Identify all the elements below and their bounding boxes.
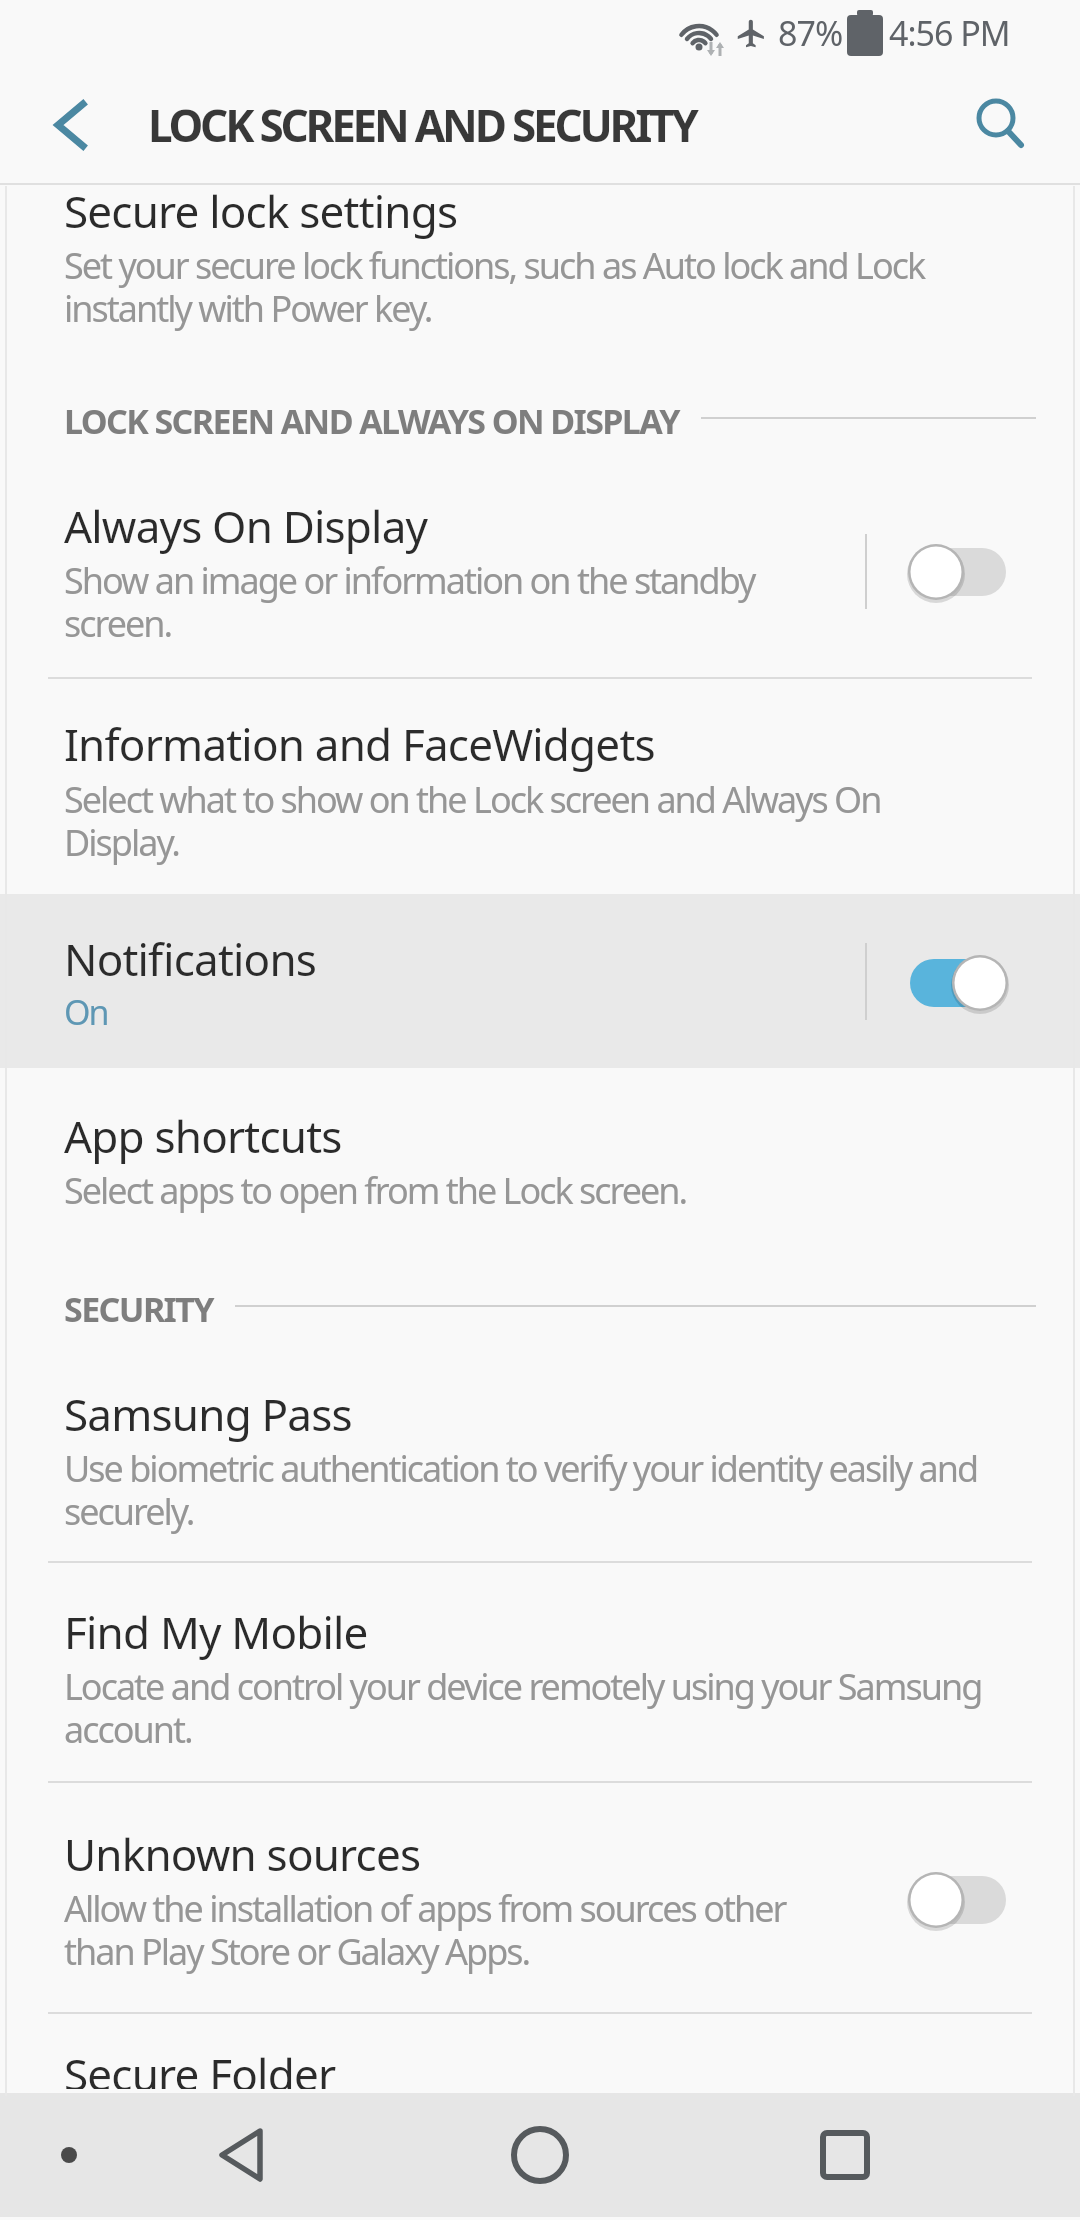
staticText: Secure lock settings xyxy=(64,181,458,241)
button[interactable] xyxy=(795,2105,895,2205)
staticText: 4:56 PM xyxy=(889,10,1010,56)
button[interactable]: Unknown sources xyxy=(0,1783,1080,2012)
staticText: Unknown sources xyxy=(64,1824,421,1884)
button[interactable] xyxy=(40,95,100,155)
staticText: On xyxy=(64,989,108,1035)
staticText: Locate and control your device remotely … xyxy=(64,1662,982,1754)
staticText: LOCK SCREEN AND ALWAYS ON DISPLAY xyxy=(64,398,679,444)
button[interactable]: Samsung Pass xyxy=(0,1357,1080,1561)
staticText: Allow the installation of apps from sour… xyxy=(64,1884,786,1976)
staticText: Find My Mobile xyxy=(64,1602,368,1662)
button[interactable]: Secure Folder xyxy=(0,2014,1080,2093)
button[interactable] xyxy=(968,93,1032,157)
staticText: App shortcuts xyxy=(64,1106,342,1166)
staticText: Set your secure lock functions, such as … xyxy=(64,241,925,333)
staticText: Information and FaceWidgets xyxy=(64,714,655,774)
button[interactable]: Find My Mobile xyxy=(0,1563,1080,1781)
staticText: Select what to show on the Lock screen a… xyxy=(64,775,881,867)
staticText: SECURITY xyxy=(64,1286,213,1332)
button[interactable]: Information and FaceWidgets xyxy=(0,679,1080,894)
staticText: 87% xyxy=(778,10,843,56)
staticText: Secure Folder xyxy=(64,2044,336,2089)
staticText: Use biometric authentication to verify y… xyxy=(64,1444,978,1536)
button[interactable]: App shortcuts xyxy=(0,1068,1080,1259)
staticText: Show an image or information on the stan… xyxy=(64,556,755,648)
button[interactable] xyxy=(190,2105,290,2205)
staticText: Select apps to open from the Lock screen… xyxy=(64,1166,687,1215)
staticText: Samsung Pass xyxy=(64,1384,352,1444)
staticText: Notifications xyxy=(64,929,317,989)
button[interactable] xyxy=(490,2105,590,2205)
button[interactable]: Notifications xyxy=(0,894,1080,1068)
staticText: LOCK SCREEN AND SECURITY xyxy=(148,95,696,155)
staticText: Always On Display xyxy=(64,496,428,556)
button[interactable]: Always On Display xyxy=(0,479,1080,677)
button[interactable]: Secure lock settings xyxy=(0,185,1080,389)
